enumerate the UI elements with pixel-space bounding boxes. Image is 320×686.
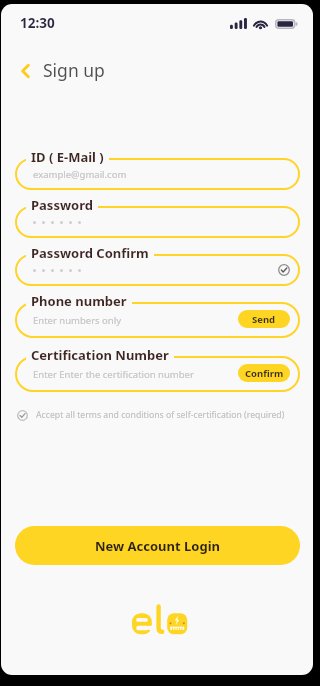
button[interactable]: [15, 158, 300, 190]
staticText: Enter Enter the certification number: [33, 368, 194, 381]
button[interactable]: [15, 302, 300, 338]
button[interactable]: [15, 206, 300, 238]
button[interactable]: [15, 254, 300, 286]
staticText: Send: [252, 313, 276, 326]
staticText: Certification Number: [31, 346, 169, 364]
staticText: 12:30: [20, 14, 55, 32]
staticText: Accept all terms and conditions of self-…: [36, 409, 285, 421]
staticText: Password: [31, 196, 93, 214]
button[interactable]: Accept all terms and conditions of self-…: [17, 407, 285, 423]
staticText: Enter numbers only: [33, 314, 122, 327]
button[interactable]: Confirm: [238, 364, 290, 382]
button[interactable]: New Account Login: [15, 526, 300, 565]
staticText: New Account Login: [95, 537, 220, 555]
staticText: example@gmail.com: [33, 168, 127, 181]
staticText: Sign up: [43, 58, 105, 82]
staticText: Phone number: [31, 292, 127, 310]
staticText: Confirm: [245, 367, 284, 380]
staticText: Password Confirm: [31, 244, 149, 262]
button[interactable]: Back: [13, 59, 37, 83]
button[interactable]: [15, 356, 300, 392]
staticText: ID ( E-Mail ): [31, 148, 104, 166]
button[interactable]: Send: [238, 310, 290, 328]
